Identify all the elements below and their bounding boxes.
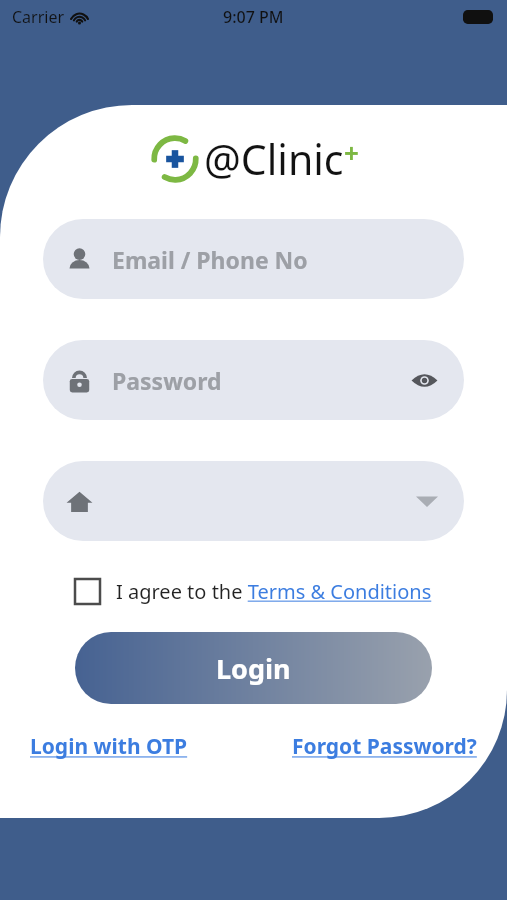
staticText: 9:07 PM <box>223 6 284 28</box>
staticText: Login with OTP <box>30 732 188 761</box>
staticText: + <box>344 135 359 170</box>
other: Show password <box>411 367 438 394</box>
button[interactable]: I agree to the Terms & Conditions <box>43 578 464 605</box>
button[interactable]: Email / Phone No <box>43 219 464 299</box>
button[interactable]: Login with OTP <box>30 732 188 761</box>
staticText: Email / Phone No <box>112 244 308 275</box>
staticText: @Clinic <box>204 131 344 187</box>
button[interactable]: Forgot Password? <box>292 732 477 761</box>
staticText: I agree to the Terms & Conditions <box>116 578 432 605</box>
button[interactable]: Open dropdown <box>43 461 464 541</box>
staticText: Login <box>216 650 291 687</box>
staticText: Password <box>112 365 222 396</box>
button[interactable]: Login <box>75 632 432 704</box>
button[interactable]: Password <box>43 340 464 420</box>
other: Open dropdown <box>416 494 438 508</box>
staticText: Forgot Password? <box>292 732 477 761</box>
staticText: Carrier <box>12 6 65 28</box>
